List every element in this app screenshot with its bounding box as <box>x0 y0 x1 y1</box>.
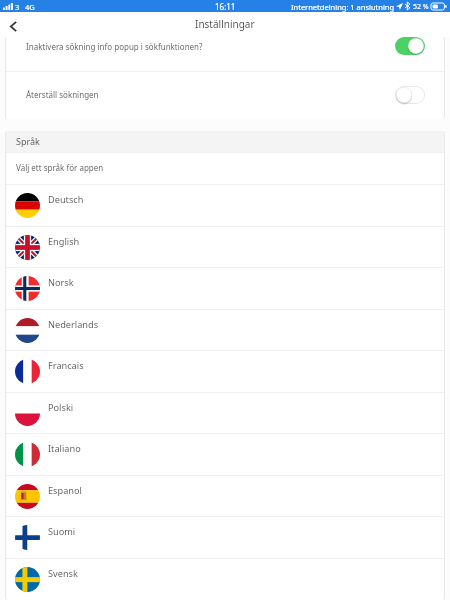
button[interactable]: Deutsch <box>6 184 444 226</box>
button[interactable]: Francais <box>6 350 444 392</box>
staticText: 3 <box>15 2 20 12</box>
staticText: 4G <box>25 2 35 12</box>
button[interactable]: Välj ett språk för appen <box>6 153 444 184</box>
staticText: Inaktivera sökning info popup i sökfunkt… <box>26 41 395 52</box>
staticText: Återställ sökningen <box>26 89 395 100</box>
staticText: Deutsch <box>48 193 84 206</box>
staticText: Norsk <box>48 276 74 289</box>
staticText: Francais <box>48 359 84 372</box>
staticText: Suomi <box>48 525 76 538</box>
staticText: Språk <box>16 135 40 147</box>
staticText: Internetdelning: 1 anslutning <box>291 2 395 12</box>
button[interactable]: Back <box>0 12 24 36</box>
staticText: English <box>48 235 80 248</box>
staticText: Polski <box>48 401 74 414</box>
staticText: Inställningar <box>195 17 255 31</box>
staticText: Espanol <box>48 484 82 497</box>
button[interactable]: Polski <box>6 392 444 434</box>
button[interactable]: Nederlands <box>6 309 444 351</box>
button[interactable]: Norsk <box>6 267 444 309</box>
button[interactable]: Återställ sökningen <box>6 72 444 119</box>
button[interactable]: Italiano <box>6 433 444 475</box>
button[interactable]: Inaktivera sökning info popup i sökfunkt… <box>6 37 444 71</box>
staticText: 52 % <box>413 2 429 12</box>
staticText: Välj ett språk för appen <box>16 162 104 173</box>
button[interactable]: Espanol <box>6 475 444 517</box>
staticText: Svensk <box>48 567 78 580</box>
button[interactable]: Svensk <box>6 558 444 600</box>
staticText: 16:11 <box>215 1 236 12</box>
staticText: Italiano <box>48 442 81 455</box>
button[interactable]: English <box>6 226 444 268</box>
staticText: Nederlands <box>48 318 99 331</box>
button[interactable]: Suomi <box>6 516 444 558</box>
